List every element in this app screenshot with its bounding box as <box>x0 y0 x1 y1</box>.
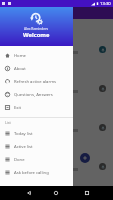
button[interactable]: Home <box>52 189 60 197</box>
staticText: Done <box>14 157 25 163</box>
button[interactable]: About <box>0 62 73 75</box>
button[interactable]: Alex Reminders <box>0 0 73 46</box>
button[interactable]: Exit <box>0 101 73 114</box>
button[interactable]: Ask before calling <box>0 166 73 179</box>
button[interactable]: Done <box>0 153 73 166</box>
staticText: List <box>5 120 11 125</box>
button[interactable]: Back <box>25 189 33 197</box>
staticText: Welcome <box>23 31 50 39</box>
button[interactable] <box>0 69 113 108</box>
staticText: About <box>14 66 26 72</box>
button[interactable] <box>0 108 113 147</box>
staticText: Home <box>14 53 26 59</box>
staticText: Exit <box>14 105 22 111</box>
button[interactable]: Add reminder <box>80 153 90 163</box>
staticText: Alex Reminders <box>24 26 49 30</box>
staticText: Refresh active alarms <box>14 79 57 85</box>
staticText: 13:30 <box>100 1 111 7</box>
button[interactable] <box>0 30 113 69</box>
staticText: Questions, Answers <box>14 92 53 98</box>
button[interactable]: Today list <box>0 127 73 140</box>
button[interactable]: Refresh active alarms <box>0 75 73 88</box>
button[interactable] <box>0 147 113 186</box>
staticText: Today list <box>14 131 33 137</box>
button[interactable]: Questions, Answers <box>0 88 73 101</box>
button[interactable]: Home <box>0 49 73 62</box>
button[interactable]: Active list <box>0 140 73 153</box>
staticText: Active list <box>14 144 33 150</box>
staticText: Ask before calling <box>14 170 49 176</box>
button[interactable]: Recents <box>83 189 91 197</box>
